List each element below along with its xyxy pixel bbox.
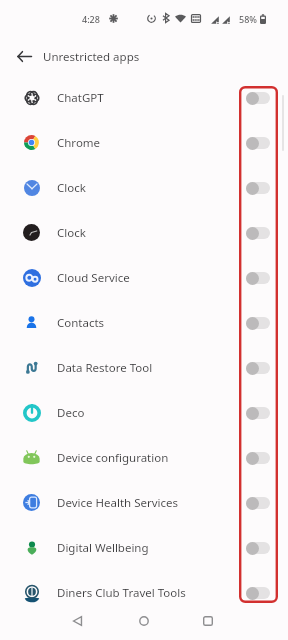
button[interactable]: Clock bbox=[0, 210, 288, 255]
button[interactable]: Contacts bbox=[0, 300, 288, 345]
button[interactable]: Toggle unrestricted for ChatGPT bbox=[246, 91, 270, 105]
button[interactable]: Device configuration bbox=[0, 435, 288, 480]
staticText: Device configuration bbox=[57, 450, 169, 466]
staticText: Data Restore Tool bbox=[57, 360, 153, 376]
button[interactable]: Toggle unrestricted for Device Health Se… bbox=[246, 496, 270, 510]
staticText: Digital Wellbeing bbox=[57, 540, 149, 556]
button[interactable]: Digital Wellbeing bbox=[0, 525, 288, 570]
button[interactable]: Data Restore Tool bbox=[0, 345, 288, 390]
button[interactable]: Recent apps bbox=[193, 606, 223, 636]
button[interactable]: Device Health Services bbox=[0, 480, 288, 525]
button[interactable]: Navigate up bbox=[10, 44, 38, 68]
button[interactable]: Cloud Service bbox=[0, 255, 288, 300]
button[interactable]: Toggle unrestricted for Deco bbox=[246, 406, 270, 420]
button[interactable]: Toggle unrestricted for Chrome bbox=[246, 136, 270, 150]
staticText: Device Health Services bbox=[57, 495, 179, 511]
staticText: Clock bbox=[57, 180, 86, 196]
staticText: Deco bbox=[57, 405, 85, 421]
button[interactable]: Back bbox=[62, 606, 92, 636]
staticText: 58% bbox=[239, 13, 257, 25]
button[interactable]: Toggle unrestricted for Device configura… bbox=[246, 451, 270, 465]
staticText: Chrome bbox=[57, 135, 101, 151]
button[interactable]: Toggle unrestricted for Contacts bbox=[246, 316, 270, 330]
button[interactable]: Toggle unrestricted for Digital Wellbein… bbox=[246, 541, 270, 555]
button[interactable]: Deco bbox=[0, 390, 288, 435]
button[interactable]: Toggle unrestricted for Cloud Service bbox=[246, 271, 270, 285]
button[interactable]: Home bbox=[129, 606, 159, 636]
button[interactable]: Toggle unrestricted for Clock bbox=[246, 226, 270, 240]
staticText: Cloud Service bbox=[57, 270, 130, 286]
staticText: Diners Club Travel Tools bbox=[57, 585, 186, 601]
button[interactable]: Toggle unrestricted for Diners Club Trav… bbox=[246, 586, 270, 600]
staticText: Unrestricted apps bbox=[43, 49, 140, 65]
button[interactable]: Chrome bbox=[0, 120, 288, 165]
button[interactable]: Diners Club Travel Tools bbox=[0, 570, 288, 615]
button[interactable]: Clock bbox=[0, 165, 288, 210]
staticText: 4:28 bbox=[82, 13, 100, 25]
staticText: Clock bbox=[57, 225, 86, 241]
button[interactable]: Toggle unrestricted for Data Restore Too… bbox=[246, 361, 270, 375]
button[interactable]: Toggle unrestricted for Clock bbox=[246, 181, 270, 195]
button[interactable]: ChatGPT bbox=[0, 75, 288, 120]
staticText: Contacts bbox=[57, 315, 105, 331]
staticText: ChatGPT bbox=[57, 90, 104, 106]
